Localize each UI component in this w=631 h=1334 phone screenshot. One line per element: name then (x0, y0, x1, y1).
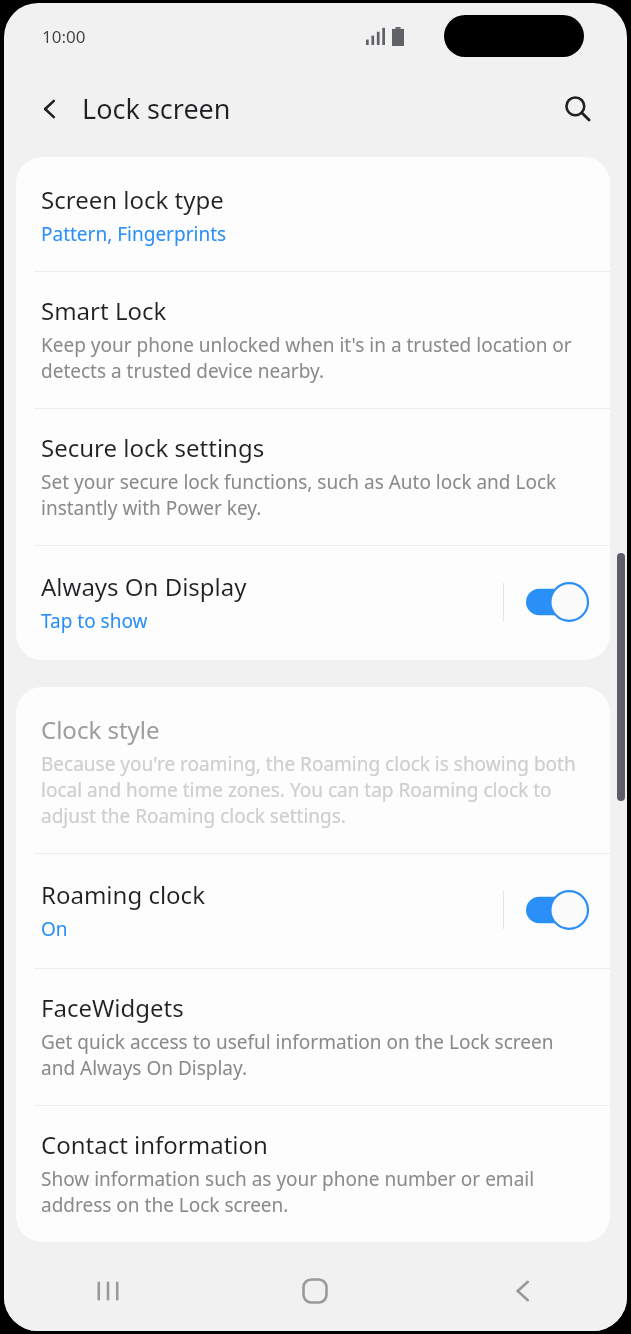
staticText: Set your secure lock functions, such as … (41, 469, 584, 521)
staticText: Always On Display (41, 570, 247, 603)
staticText: Get quick access to useful information o… (41, 1029, 584, 1081)
button[interactable]: Always On Display (16, 546, 610, 660)
staticText: On (41, 916, 68, 942)
staticText: Roaming clock (41, 878, 205, 911)
staticText: Pattern, Fingerprints (41, 221, 227, 247)
button[interactable]: Smart Lock (16, 272, 610, 408)
staticText: Keep your phone unlocked when it's in a … (41, 332, 584, 384)
staticText: FaceWidgets (41, 991, 184, 1024)
button[interactable]: Lock screen (30, 84, 239, 133)
staticText: Contact information (41, 1128, 268, 1161)
button[interactable]: Secure lock settings (16, 409, 610, 545)
staticText: Secure lock settings (41, 431, 265, 464)
button[interactable]: FaceWidgets (16, 969, 610, 1105)
button[interactable]: Toggle on (526, 890, 588, 930)
staticText: Smart Lock (41, 294, 167, 327)
button[interactable]: Roaming clock (16, 854, 610, 968)
staticText: Clock style (41, 713, 160, 746)
button[interactable]: Home (211, 1251, 419, 1331)
button[interactable]: Contact information (16, 1106, 610, 1242)
staticText: Screen lock type (41, 183, 224, 216)
button[interactable]: Recent apps (4, 1251, 211, 1331)
button[interactable]: Screen lock type (16, 157, 610, 271)
button[interactable]: Toggle on (526, 582, 588, 622)
button[interactable]: Search (551, 82, 603, 134)
button[interactable]: Clock style (16, 687, 610, 853)
staticText: Tap to show (41, 608, 148, 634)
staticText: 10:00 (42, 25, 86, 48)
staticText: Lock screen (82, 90, 231, 127)
button[interactable]: Back (419, 1251, 627, 1331)
staticText: Because you're roaming, the Roaming cloc… (41, 751, 584, 829)
staticText: Show information such as your phone numb… (41, 1166, 584, 1218)
